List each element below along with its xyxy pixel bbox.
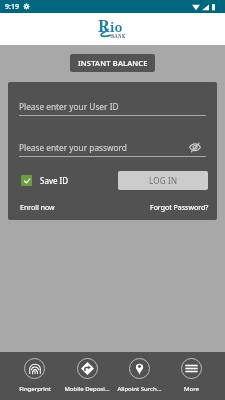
staticText: R xyxy=(98,15,110,37)
staticText: LOG IN xyxy=(149,175,178,186)
button[interactable]: Enroll now xyxy=(20,203,55,213)
button[interactable]: INSTANT BALANCE xyxy=(70,54,155,72)
staticText: BANK xyxy=(111,33,126,39)
staticText: Allpoint Surch... xyxy=(117,385,162,393)
staticText: 9:19 xyxy=(5,2,19,12)
staticText: Mobile Deposi... xyxy=(64,385,110,393)
staticText: Please enter your password xyxy=(19,142,127,153)
staticText: Please enter your User ID xyxy=(19,101,119,112)
button[interactable]: More xyxy=(165,352,217,400)
staticText: io xyxy=(110,18,123,36)
staticText: Save ID xyxy=(40,175,69,186)
button[interactable]: Mobile Deposi... xyxy=(61,352,113,400)
button[interactable]: LOG IN xyxy=(118,171,208,190)
staticText: INSTANT BALANCE xyxy=(78,58,148,68)
staticText: Fingerprint xyxy=(19,385,51,393)
staticText: More xyxy=(184,385,199,393)
button[interactable]: Allpoint Surch... xyxy=(113,352,165,400)
button[interactable]: Save ID xyxy=(21,175,69,186)
button[interactable]: Fingerprint xyxy=(8,352,61,400)
button[interactable]: Show password xyxy=(186,138,203,155)
button[interactable]: Forgot Password? xyxy=(150,203,209,213)
